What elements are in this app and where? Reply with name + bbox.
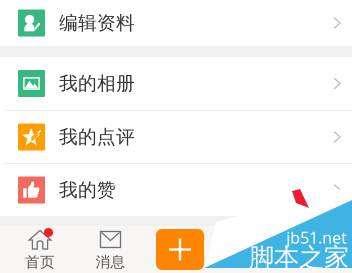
staticText: 我的相册 (59, 72, 135, 95)
staticText: 首页 (25, 253, 55, 271)
button[interactable]: 我的相册 (0, 57, 352, 110)
staticText: 编辑资料 (59, 11, 135, 34)
staticText: 消息 (95, 253, 125, 271)
button[interactable]: 我的赞 (0, 163, 352, 216)
staticText: jb51.net (286, 227, 347, 248)
button[interactable]: 编辑资料 (0, 0, 352, 46)
button[interactable]: 消息 (80, 226, 141, 273)
staticText: 我的赞 (59, 178, 116, 201)
button[interactable]: 我的点评 (0, 110, 352, 163)
staticText: 我的点评 (59, 125, 135, 148)
button[interactable]: 首页 (0, 226, 80, 273)
staticText: 脚本之家 (249, 242, 349, 273)
button[interactable]: Add (156, 229, 204, 270)
